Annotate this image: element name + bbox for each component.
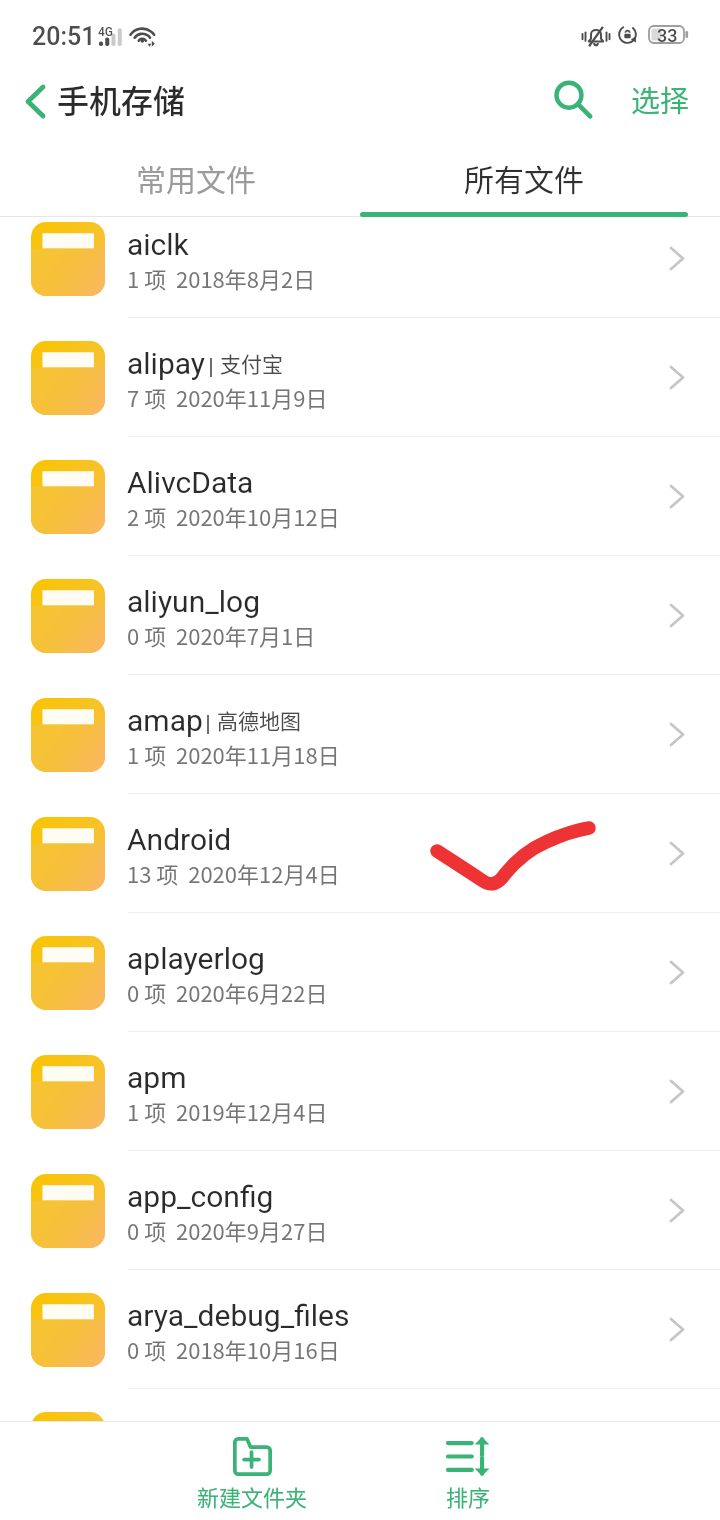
staticText: alipay xyxy=(127,346,206,381)
button[interactable]: arya_debug_files xyxy=(0,1270,720,1389)
button[interactable]: Android xyxy=(0,794,720,913)
staticText: aplayerlog xyxy=(127,941,265,976)
staticText: 所有文件 xyxy=(464,156,584,199)
staticText: 2 项 2020年10月12日 xyxy=(127,500,340,532)
staticText: 支付宝 xyxy=(220,348,283,378)
staticText: 0 项 2018年10月16日 xyxy=(127,1333,340,1365)
staticText: amap xyxy=(127,703,203,738)
button[interactable]: 选择 xyxy=(616,62,704,136)
button[interactable]: 返回 xyxy=(5,71,65,131)
staticText: apm xyxy=(127,1060,187,1095)
staticText: app_config xyxy=(127,1179,274,1214)
staticText: 1 项 2018年8月2日 xyxy=(127,262,316,294)
staticText: 0 项 2020年7月1日 xyxy=(127,619,316,651)
button[interactable]: 排序 xyxy=(378,1422,558,1520)
staticText: 高德地图 xyxy=(217,705,301,735)
staticText: 排序 xyxy=(446,1480,491,1512)
button[interactable]: 搜索 xyxy=(540,67,604,131)
staticText: 20:51 xyxy=(32,22,96,51)
staticText: 1 项 2020年11月18日 xyxy=(127,738,340,770)
button[interactable]: apm xyxy=(0,1032,720,1151)
staticText: arya_debug_files xyxy=(127,1298,350,1333)
button[interactable]: 常用文件 xyxy=(32,136,360,216)
staticText: aiclk xyxy=(127,227,189,262)
button[interactable]: aiclk xyxy=(0,217,720,318)
staticText: aliyun_log xyxy=(127,584,260,619)
staticText: 选择 xyxy=(631,78,690,120)
staticText: 7 项 2020年11月9日 xyxy=(127,381,328,413)
staticText: 常用文件 xyxy=(136,156,256,199)
button[interactable]: app_config xyxy=(0,1151,720,1270)
button[interactable]: aplayerlog xyxy=(0,913,720,1032)
staticText: AlivcData xyxy=(127,465,254,500)
staticText: 1 项 2019年12月4日 xyxy=(127,1095,328,1127)
button[interactable]: AlivcData xyxy=(0,437,720,556)
button[interactable]: 所有文件 xyxy=(360,136,688,216)
button[interactable]: alipay xyxy=(0,318,720,437)
staticText: 13 项 2020年12月4日 xyxy=(127,857,340,889)
staticText: 0 项 2020年9月27日 xyxy=(127,1214,328,1246)
staticText: 33 xyxy=(657,25,678,44)
button[interactable]: 新建文件夹 xyxy=(162,1422,342,1520)
staticText: 0 项 2020年6月22日 xyxy=(127,976,328,1008)
button[interactable]: amap xyxy=(0,675,720,794)
staticText: 4G xyxy=(98,25,113,39)
staticText: 新建文件夹 xyxy=(197,1480,308,1512)
staticText: 手机存储 xyxy=(57,76,186,122)
button[interactable]: aliyun_log xyxy=(0,556,720,675)
staticText: Android xyxy=(127,822,232,857)
